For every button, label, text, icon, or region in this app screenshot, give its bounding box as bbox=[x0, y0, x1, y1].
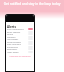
staticText: Manage all settings bbox=[6, 55, 34, 58]
button[interactable]: Daily summary bbox=[6, 43, 34, 45]
button[interactable]: Promotions bbox=[6, 46, 34, 48]
button[interactable]: Push notifications bbox=[6, 28, 34, 30]
staticText: Vibration bbox=[7, 36, 16, 38]
staticText: Alerts bbox=[7, 25, 16, 29]
button[interactable]: App badges bbox=[6, 38, 34, 40]
staticText: Show previews bbox=[7, 41, 21, 43]
button[interactable]: Reminders bbox=[6, 48, 34, 50]
staticText: News digest bbox=[7, 51, 19, 53]
staticText: Daily summary bbox=[7, 43, 22, 45]
staticText: Push notifications bbox=[7, 28, 24, 30]
other: Push notifications bbox=[28, 28, 33, 30]
staticText: Promotions bbox=[7, 46, 18, 48]
button[interactable]: News digest bbox=[6, 51, 34, 53]
button[interactable]: Vibration bbox=[6, 36, 34, 38]
button[interactable]: Show previews bbox=[6, 41, 34, 43]
staticText: Email updates bbox=[7, 31, 21, 33]
staticText: Get notified and stay in the loop today bbox=[2, 2, 62, 6]
staticText: Reminders bbox=[7, 48, 18, 50]
staticText: Sound bbox=[7, 33, 14, 35]
staticText: App badges bbox=[7, 38, 19, 40]
button[interactable]: Email updates bbox=[6, 31, 34, 33]
button[interactable]: Sound bbox=[6, 33, 34, 35]
